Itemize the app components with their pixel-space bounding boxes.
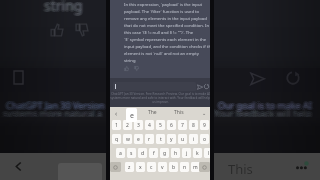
button[interactable]: b (169, 162, 178, 172)
staticText: us improve. (152, 100, 169, 104)
staticText: a (119, 150, 122, 157)
staticText: x (139, 164, 142, 171)
button[interactable]: 9 (200, 120, 209, 130)
button[interactable]: l (204, 148, 213, 158)
button[interactable]: Previous suggestions (112, 109, 120, 117)
staticText: ChatGPT Jan 30 Version (8, 99, 107, 111)
staticText: The (148, 109, 157, 116)
button[interactable]: 8 (189, 120, 198, 130)
button[interactable]: 4 (145, 120, 154, 130)
staticText: k (196, 150, 199, 157)
staticText: Our goal is to make AI (218, 100, 312, 112)
staticText: Our goal is to make AI (219, 98, 313, 110)
staticText: Your feedback will help (212, 107, 310, 119)
button[interactable]: 5 (156, 120, 165, 130)
staticText: systems more natural a (2, 108, 102, 120)
button[interactable]: q (112, 134, 121, 144)
button[interactable]: e (134, 134, 143, 144)
staticText: Your feedback will help (215, 106, 313, 118)
button[interactable]: 7 (178, 120, 187, 130)
staticText: ChatGPT Jan 30 Version (6, 99, 105, 111)
button[interactable]: 1 (112, 120, 121, 130)
button[interactable]: u (178, 134, 187, 144)
staticText: e (130, 111, 134, 121)
button[interactable]: f (149, 148, 158, 158)
staticText: Your feedback will help (216, 107, 314, 119)
staticText: 8 (192, 122, 195, 129)
button[interactable]: The (148, 109, 157, 116)
staticText: 6 (170, 122, 173, 129)
staticText: systems more natural a (3, 106, 103, 118)
staticText: g (163, 150, 167, 157)
staticText: 7 (181, 122, 184, 129)
button[interactable]: s (127, 148, 136, 158)
staticText: Your feedback will help (214, 106, 312, 118)
staticText: 5 (159, 122, 162, 129)
staticText: string (45, 0, 84, 14)
staticText: y (170, 136, 173, 143)
staticText: Your feedback will help (215, 108, 313, 120)
staticText: systems more natural and safe to interac… (110, 96, 210, 100)
staticText: systems more natural a (3, 108, 103, 120)
button[interactable]: i (189, 134, 198, 144)
button[interactable]: 6 (167, 120, 176, 130)
staticText: Our goal is to make AI (218, 98, 312, 110)
staticText: w (126, 136, 130, 143)
staticText: Our goal is to make AI (220, 99, 314, 111)
button[interactable]: d (138, 148, 147, 158)
button[interactable]: Shift (110, 162, 121, 172)
staticText: this case `($ != null and $ != "")`. The (124, 30, 194, 36)
staticText: Our goal is to make AI (217, 100, 311, 112)
button[interactable]: y (167, 134, 176, 144)
staticText: string (46, 0, 85, 15)
staticText: ChatGPT Jan 30 Version (5, 98, 104, 110)
button[interactable]: Back (8, 156, 28, 176)
button[interactable]: r (145, 134, 154, 144)
staticText: 9 (203, 122, 206, 129)
button[interactable]: v (158, 162, 167, 172)
staticText: element is not `null` and not an empty (124, 51, 199, 57)
staticText: string (42, 0, 81, 15)
button[interactable]: m (191, 162, 200, 172)
button[interactable]: n (180, 162, 189, 172)
button[interactable]: More options (292, 157, 312, 177)
button[interactable]: x (136, 162, 145, 172)
button[interactable]: j (182, 148, 191, 158)
staticText: In this expression, `payload` is the inp… (124, 2, 202, 8)
staticText: systems more natural a (5, 107, 105, 119)
staticText: This (228, 160, 253, 178)
button[interactable]: g (160, 148, 169, 158)
button[interactable]: k (193, 148, 202, 158)
button[interactable]: w (123, 134, 132, 144)
button[interactable]: c (147, 162, 156, 172)
button[interactable]: Backspace (199, 162, 210, 172)
button[interactable]: 3 (134, 120, 143, 130)
staticText: ‹ (115, 109, 118, 117)
button[interactable]: t (156, 134, 165, 144)
button[interactable]: Like (123, 65, 130, 72)
button[interactable]: Regenerate (203, 83, 210, 90)
button[interactable]: h (171, 148, 180, 158)
button[interactable]: Dislike (133, 65, 140, 72)
staticText: o (203, 136, 207, 143)
staticText: q (115, 136, 119, 143)
staticText: input payload, and the condition checks … (124, 44, 210, 50)
staticText: string (43, 0, 82, 16)
button[interactable] (113, 82, 196, 91)
staticText: Our goal is to make AI (218, 99, 312, 111)
staticText: systems more natural a (4, 106, 104, 118)
button[interactable]: This (174, 109, 184, 116)
staticText: r (148, 136, 151, 143)
staticText: ChatGPT Jan 30 Version (6, 98, 105, 110)
staticText: string (44, 0, 83, 15)
staticText: ChatGPT Jan 30 Version (4, 99, 103, 111)
button[interactable]: z (125, 162, 134, 172)
button[interactable]: 2 (123, 120, 132, 130)
staticText: string (45, 0, 84, 16)
button[interactable]: Send (197, 84, 203, 90)
staticText: Our goal is to make AI (219, 100, 313, 112)
button[interactable]: a (116, 148, 125, 158)
button[interactable]: o (200, 134, 209, 144)
button[interactable]: Expand (201, 109, 208, 116)
staticText: payload. The `filter` function is used t… (124, 9, 200, 15)
